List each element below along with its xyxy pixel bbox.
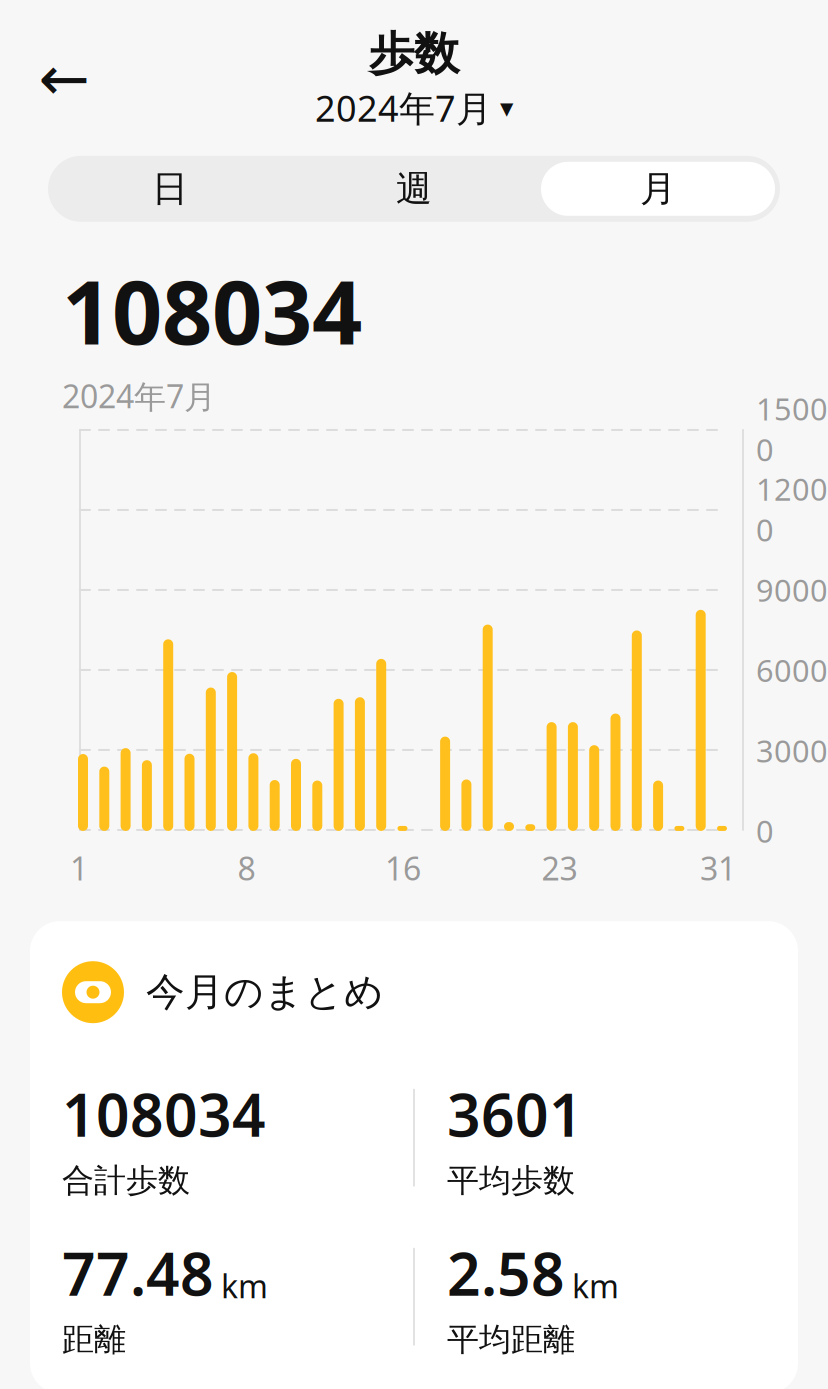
staticText: 2024年7月 [315,84,492,132]
button[interactable]: 今月のまとめ [30,921,798,1041]
staticText: 8 [237,847,255,889]
staticText: 月 [640,167,676,211]
staticText: 0 [756,811,774,851]
button[interactable]: 月 [536,156,780,222]
staticText: km [572,1264,619,1307]
staticText: 3000 [756,730,828,771]
staticText: 1 [70,847,88,889]
staticText: 平均歩数 [447,1161,575,1200]
staticText: 歩数 [369,26,459,82]
staticText: 距離 [62,1320,126,1359]
staticText: 23 [541,847,577,889]
staticText: km [221,1264,268,1307]
staticText: 合計歩数 [62,1161,190,1200]
button[interactable]: 日 [48,156,292,222]
staticText: 日 [152,167,188,211]
staticText: 108034 [62,252,362,369]
staticText: 週 [396,167,432,211]
staticText: 2024年7月 [62,375,216,417]
button[interactable]: 週 [292,156,536,222]
staticText: ← [38,44,89,114]
staticText: 16 [385,847,421,889]
staticText: 2.58 [447,1234,565,1312]
staticText: 15000 [756,388,828,470]
staticText: 77.48 [62,1234,214,1312]
staticText: 31 [700,847,736,889]
staticText: 6000 [756,650,828,690]
staticText: 今月のまとめ [146,968,384,1016]
staticText: ▾ [500,92,513,123]
staticText: 3601 [447,1075,583,1153]
staticText: 9000 [756,569,828,610]
staticText: 平均距離 [447,1320,575,1359]
button[interactable]: 戻る [22,37,106,121]
staticText: 108034 [62,1075,266,1153]
staticText: 12000 [756,469,828,550]
